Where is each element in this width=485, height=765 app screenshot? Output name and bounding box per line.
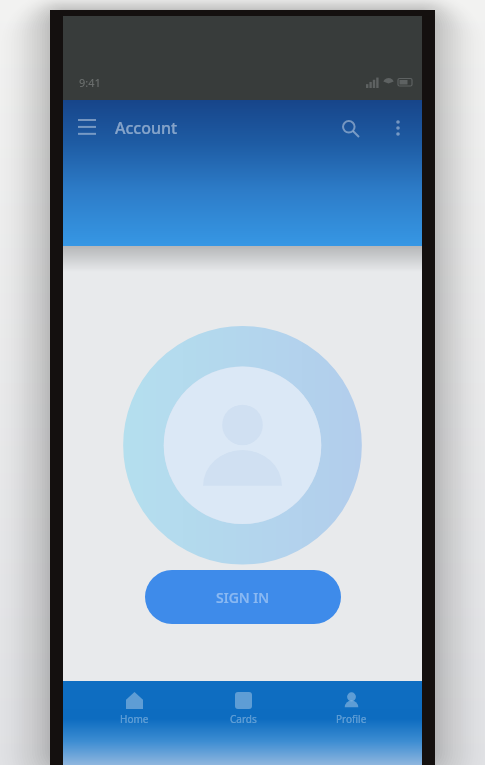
staticText: Cards (230, 712, 257, 726)
staticText: SIGN IN (216, 588, 270, 607)
button[interactable]: More options (374, 104, 422, 152)
staticText: Home (120, 712, 149, 726)
button[interactable]: Profile (313, 681, 389, 737)
button[interactable]: Cards (205, 681, 281, 737)
button[interactable]: SIGN IN (145, 570, 341, 624)
staticText: 9:41 (79, 75, 101, 90)
button[interactable]: Search (326, 104, 374, 152)
button[interactable]: Home (96, 681, 172, 737)
button[interactable]: Open navigation menu (63, 104, 111, 152)
staticText: Account (115, 117, 178, 139)
staticText: Profile (336, 712, 367, 726)
